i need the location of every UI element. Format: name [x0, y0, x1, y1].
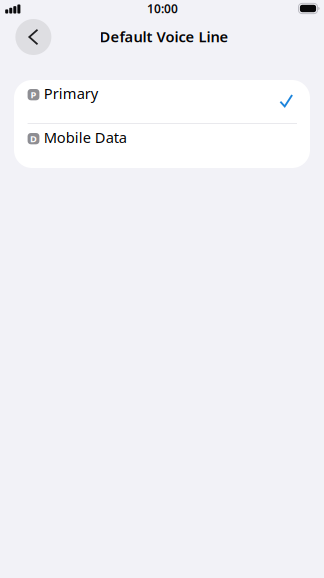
- staticText: D: [30, 132, 37, 145]
- button[interactable]: D: [14, 124, 310, 168]
- staticText: 10:00: [147, 0, 178, 16]
- button[interactable]: P: [14, 80, 310, 123]
- staticText: Primary: [44, 83, 98, 103]
- staticText: P: [30, 88, 36, 101]
- button[interactable]: Back: [15, 19, 51, 55]
- staticText: Mobile Data: [44, 127, 127, 147]
- staticText: Default Voice Line: [99, 27, 228, 46]
